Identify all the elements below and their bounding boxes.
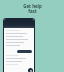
staticText: Get help fast bbox=[23, 3, 42, 15]
button[interactable] bbox=[17, 50, 32, 53]
button[interactable]: Compose bbox=[28, 68, 33, 72]
